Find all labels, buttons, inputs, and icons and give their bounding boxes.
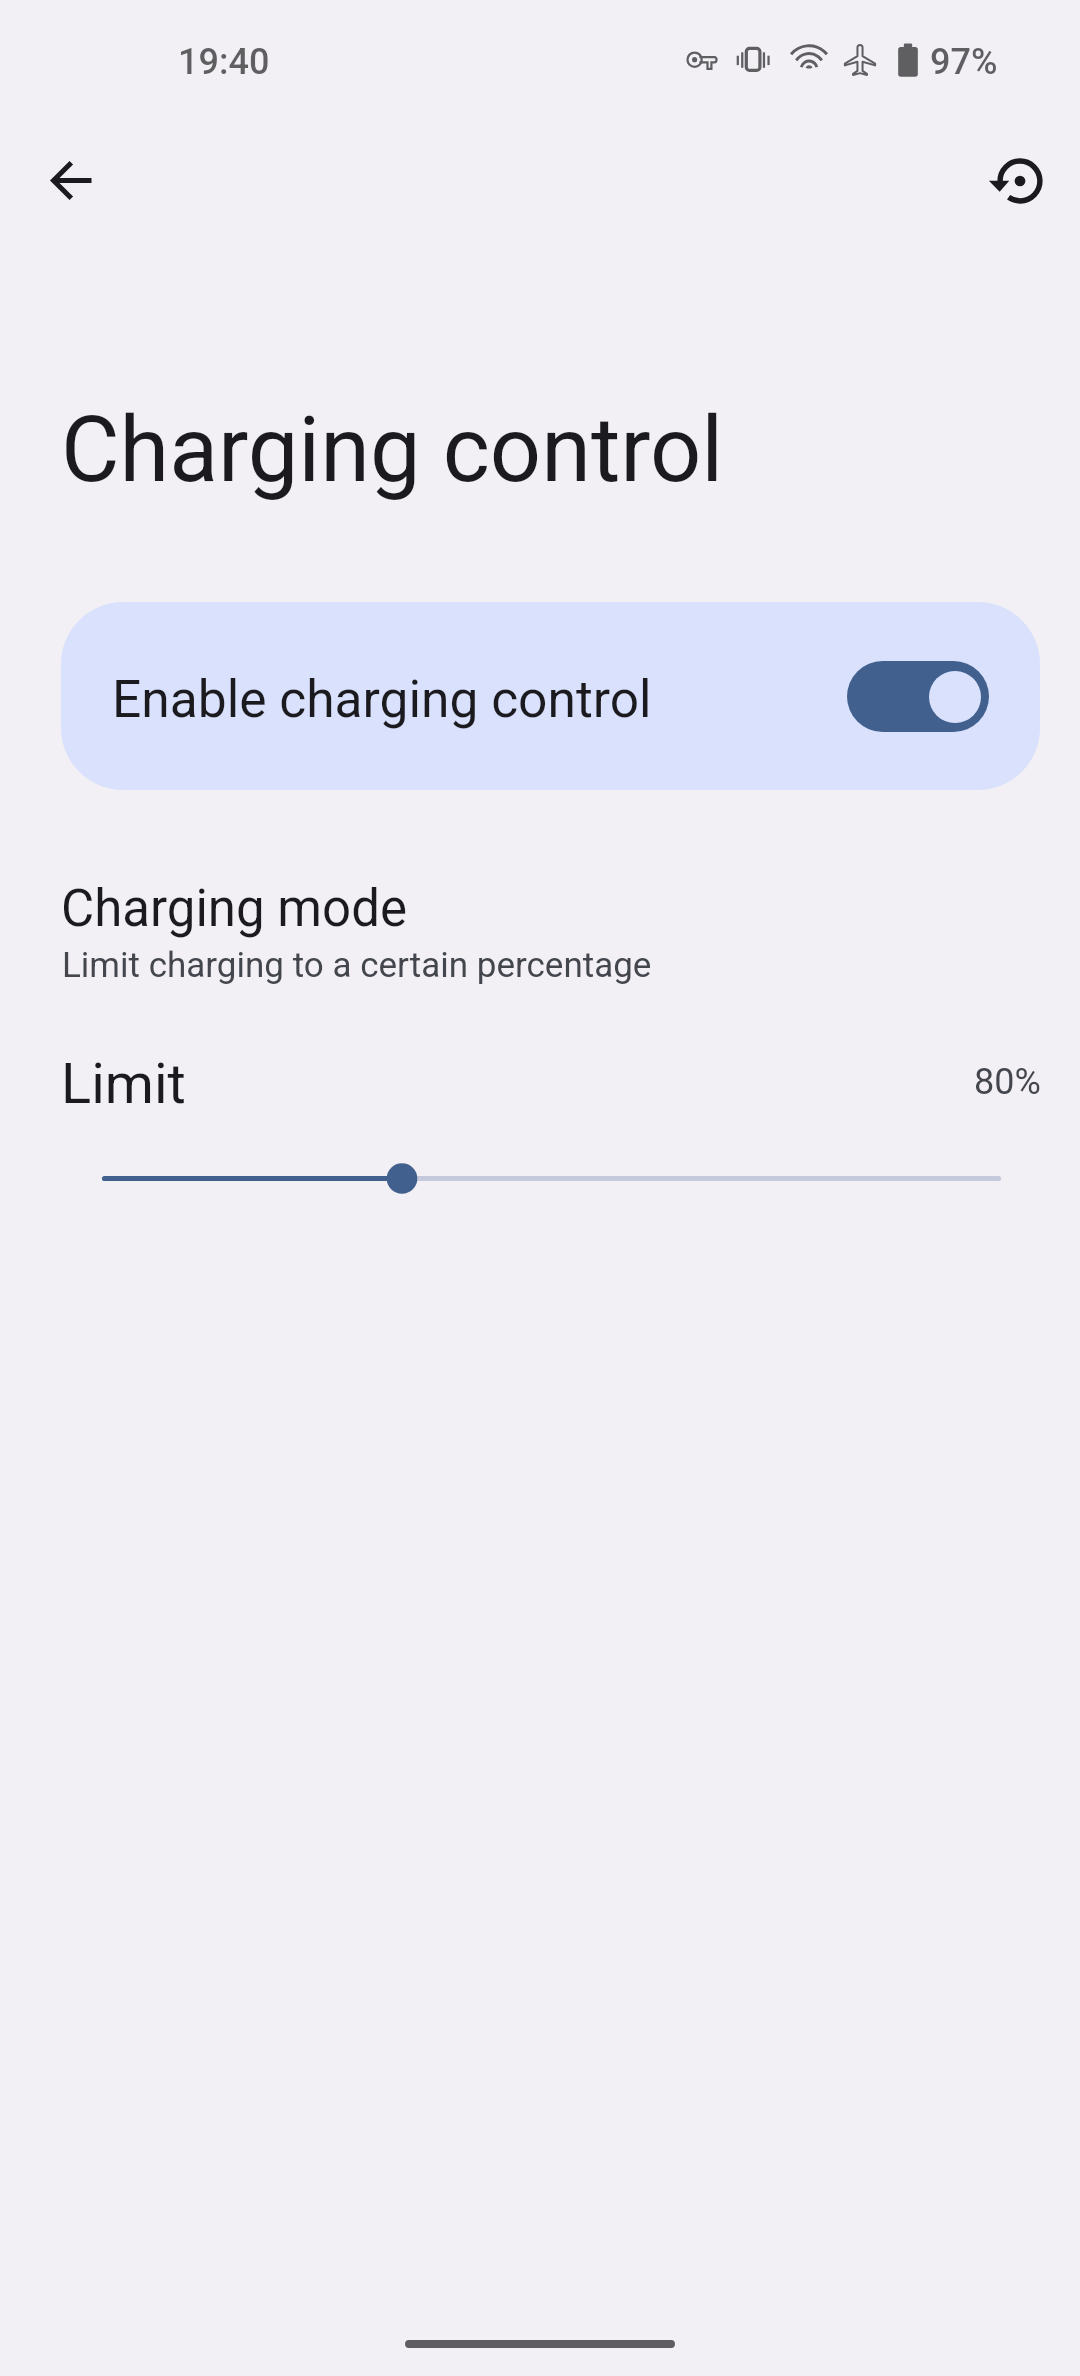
button[interactable]: Enable charging control (61, 602, 1040, 790)
button[interactable]: Back (22, 130, 123, 231)
button[interactable]: Charging limit 80 percent (0, 1020, 1080, 1216)
staticText: Enable charging control (112, 669, 652, 729)
staticText: 80% (974, 1061, 1041, 1103)
staticText: Charging control (61, 398, 724, 503)
staticText: Limit charging to a certain percentage (62, 945, 652, 986)
staticText: Limit (61, 1051, 186, 1117)
button[interactable]: Reset to default (970, 130, 1071, 231)
button[interactable]: Enable charging control (847, 661, 989, 732)
button[interactable]: Charging mode (0, 860, 1080, 1000)
staticText: Charging mode (61, 879, 407, 939)
staticText: 97% (930, 41, 998, 83)
staticText: 19:40 (178, 41, 270, 83)
